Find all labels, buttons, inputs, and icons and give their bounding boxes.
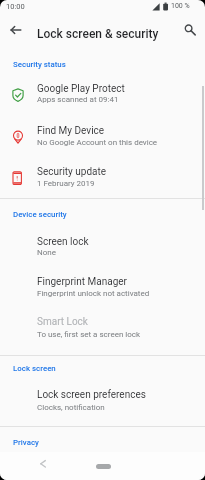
button[interactable] <box>2 16 30 44</box>
button[interactable]: Find My Device <box>0 115 205 157</box>
staticText: Security update <box>37 166 107 178</box>
button[interactable] <box>88 458 118 475</box>
staticText: Lock screen preferences <box>37 389 146 401</box>
staticText: To use, first set a screen lock <box>37 330 141 339</box>
staticText: 10:00 <box>6 2 25 11</box>
staticText: Lock screen & security <box>37 27 159 41</box>
staticText: Fingerprint Manager <box>37 276 127 288</box>
staticText: 1 February 2019 <box>37 179 95 188</box>
staticText: Screen lock <box>37 236 89 248</box>
button[interactable]: Lock screen preferences <box>0 378 205 420</box>
button[interactable]: Screen lock <box>0 226 205 268</box>
button[interactable]: Google Play Protect <box>0 72 205 114</box>
staticText: Find My Device <box>37 125 105 137</box>
staticText: Google Play Protect <box>37 83 125 95</box>
staticText: Lock screen <box>13 364 56 373</box>
staticText: Security status <box>13 60 66 69</box>
button[interactable]: Fingerprint Manager <box>0 266 205 308</box>
button[interactable]: Security update <box>0 156 205 198</box>
staticText: None <box>37 248 56 257</box>
staticText: Apps scanned at 09:41 <box>37 95 119 104</box>
staticText: 100 % <box>171 2 190 10</box>
staticText: Device security <box>13 210 67 219</box>
staticText: Fingerprint unlock not activated <box>37 289 150 298</box>
button[interactable] <box>175 16 203 44</box>
staticText: No Google Account on this device <box>37 138 158 147</box>
staticText: Privacy <box>13 438 39 447</box>
button[interactable]: Smart Lock <box>0 306 205 348</box>
staticText: Clocks, notification <box>37 403 105 412</box>
button[interactable] <box>31 452 55 480</box>
staticText: Smart Lock <box>37 316 88 328</box>
